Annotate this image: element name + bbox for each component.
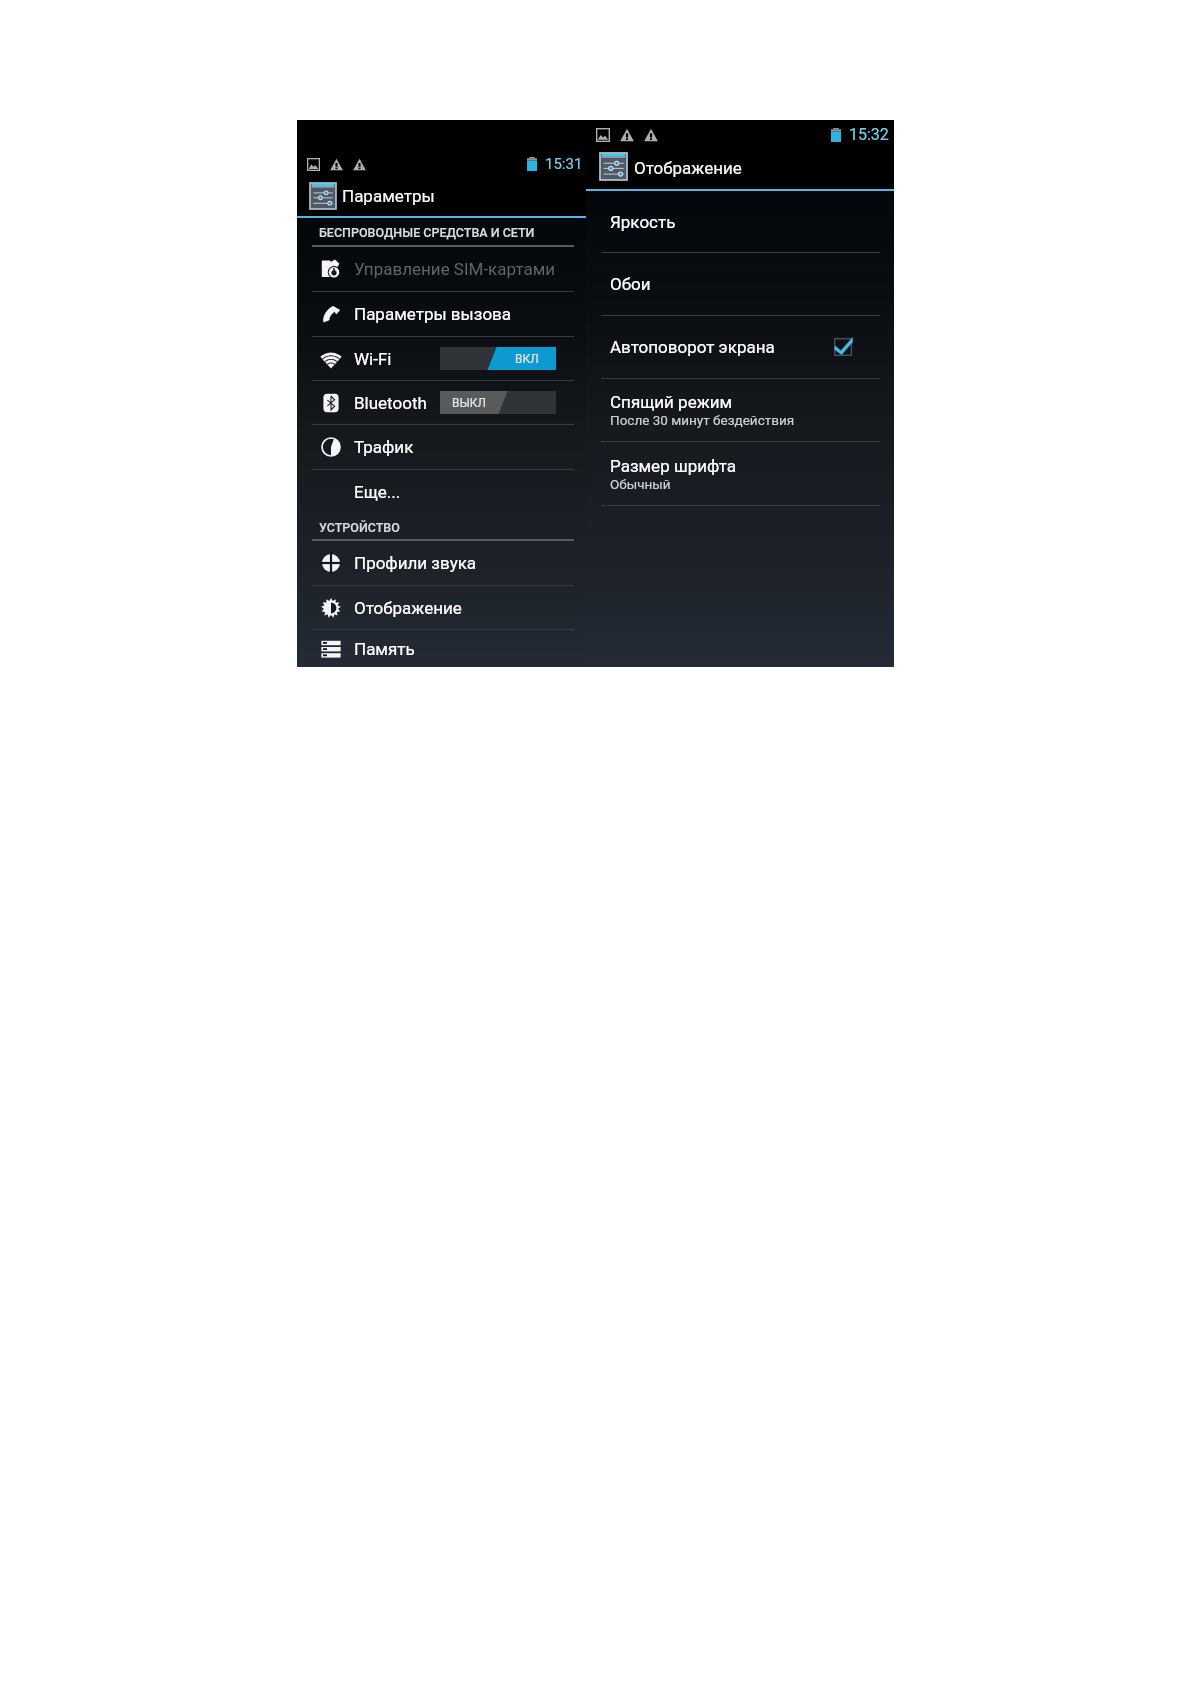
button[interactable]: Трафик bbox=[297, 425, 586, 469]
staticText: После 30 минут бездействия bbox=[610, 412, 795, 428]
staticText: ВЫКЛ bbox=[452, 396, 487, 410]
button[interactable]: Off bbox=[440, 391, 556, 414]
staticText: Управление SIM-картами bbox=[354, 259, 556, 279]
staticText: Обычный bbox=[610, 476, 671, 492]
staticText: Память bbox=[354, 639, 415, 659]
button[interactable]: Отображение bbox=[297, 586, 586, 629]
button[interactable]: Wi-Fi bbox=[297, 337, 586, 380]
button[interactable]: Спящий режим bbox=[586, 379, 894, 441]
staticText: 15:32 bbox=[849, 125, 889, 144]
button[interactable]: Обои bbox=[586, 253, 894, 315]
button[interactable]: Параметры bbox=[297, 174, 586, 216]
button[interactable]: Управление SIM-картами bbox=[297, 247, 586, 291]
button[interactable]: Размер шрифта bbox=[586, 442, 894, 505]
staticText: УСТРОЙСТВО bbox=[319, 520, 400, 535]
staticText: Трафик bbox=[354, 437, 414, 457]
other: Auto-rotate screen bbox=[834, 338, 852, 356]
staticText: Обои bbox=[610, 274, 651, 294]
staticText: Еще... bbox=[354, 482, 401, 502]
staticText: Спящий режим bbox=[610, 392, 733, 412]
button[interactable]: Параметры вызова bbox=[297, 292, 586, 336]
staticText: Bluetooth bbox=[354, 393, 427, 413]
button[interactable]: Яркость bbox=[586, 191, 894, 252]
staticText: Яркость bbox=[610, 212, 676, 232]
staticText: Wi-Fi bbox=[354, 349, 392, 369]
staticText: 15:31 bbox=[545, 155, 583, 173]
staticText: Профили звука bbox=[354, 553, 477, 573]
button[interactable]: On bbox=[440, 347, 556, 370]
staticText: Автоповорот экрана bbox=[610, 337, 775, 357]
staticText: БЕСПРОВОДНЫЕ СРЕДСТВА И СЕТИ bbox=[319, 225, 535, 240]
staticText: Размер шрифта bbox=[610, 456, 736, 476]
staticText: Отображение bbox=[634, 158, 742, 178]
button[interactable]: Отображение bbox=[586, 144, 894, 189]
staticText: Отображение bbox=[354, 598, 462, 618]
button[interactable]: Память bbox=[297, 630, 586, 667]
staticText: ВКЛ bbox=[515, 352, 539, 366]
button[interactable]: Еще... bbox=[297, 470, 586, 514]
staticText: Параметры вызова bbox=[354, 304, 512, 324]
button[interactable]: Профили звука bbox=[297, 541, 586, 585]
button[interactable]: Автоповорот экрана bbox=[586, 316, 894, 378]
button[interactable]: Bluetooth bbox=[297, 381, 586, 424]
staticText: Параметры bbox=[342, 186, 435, 206]
